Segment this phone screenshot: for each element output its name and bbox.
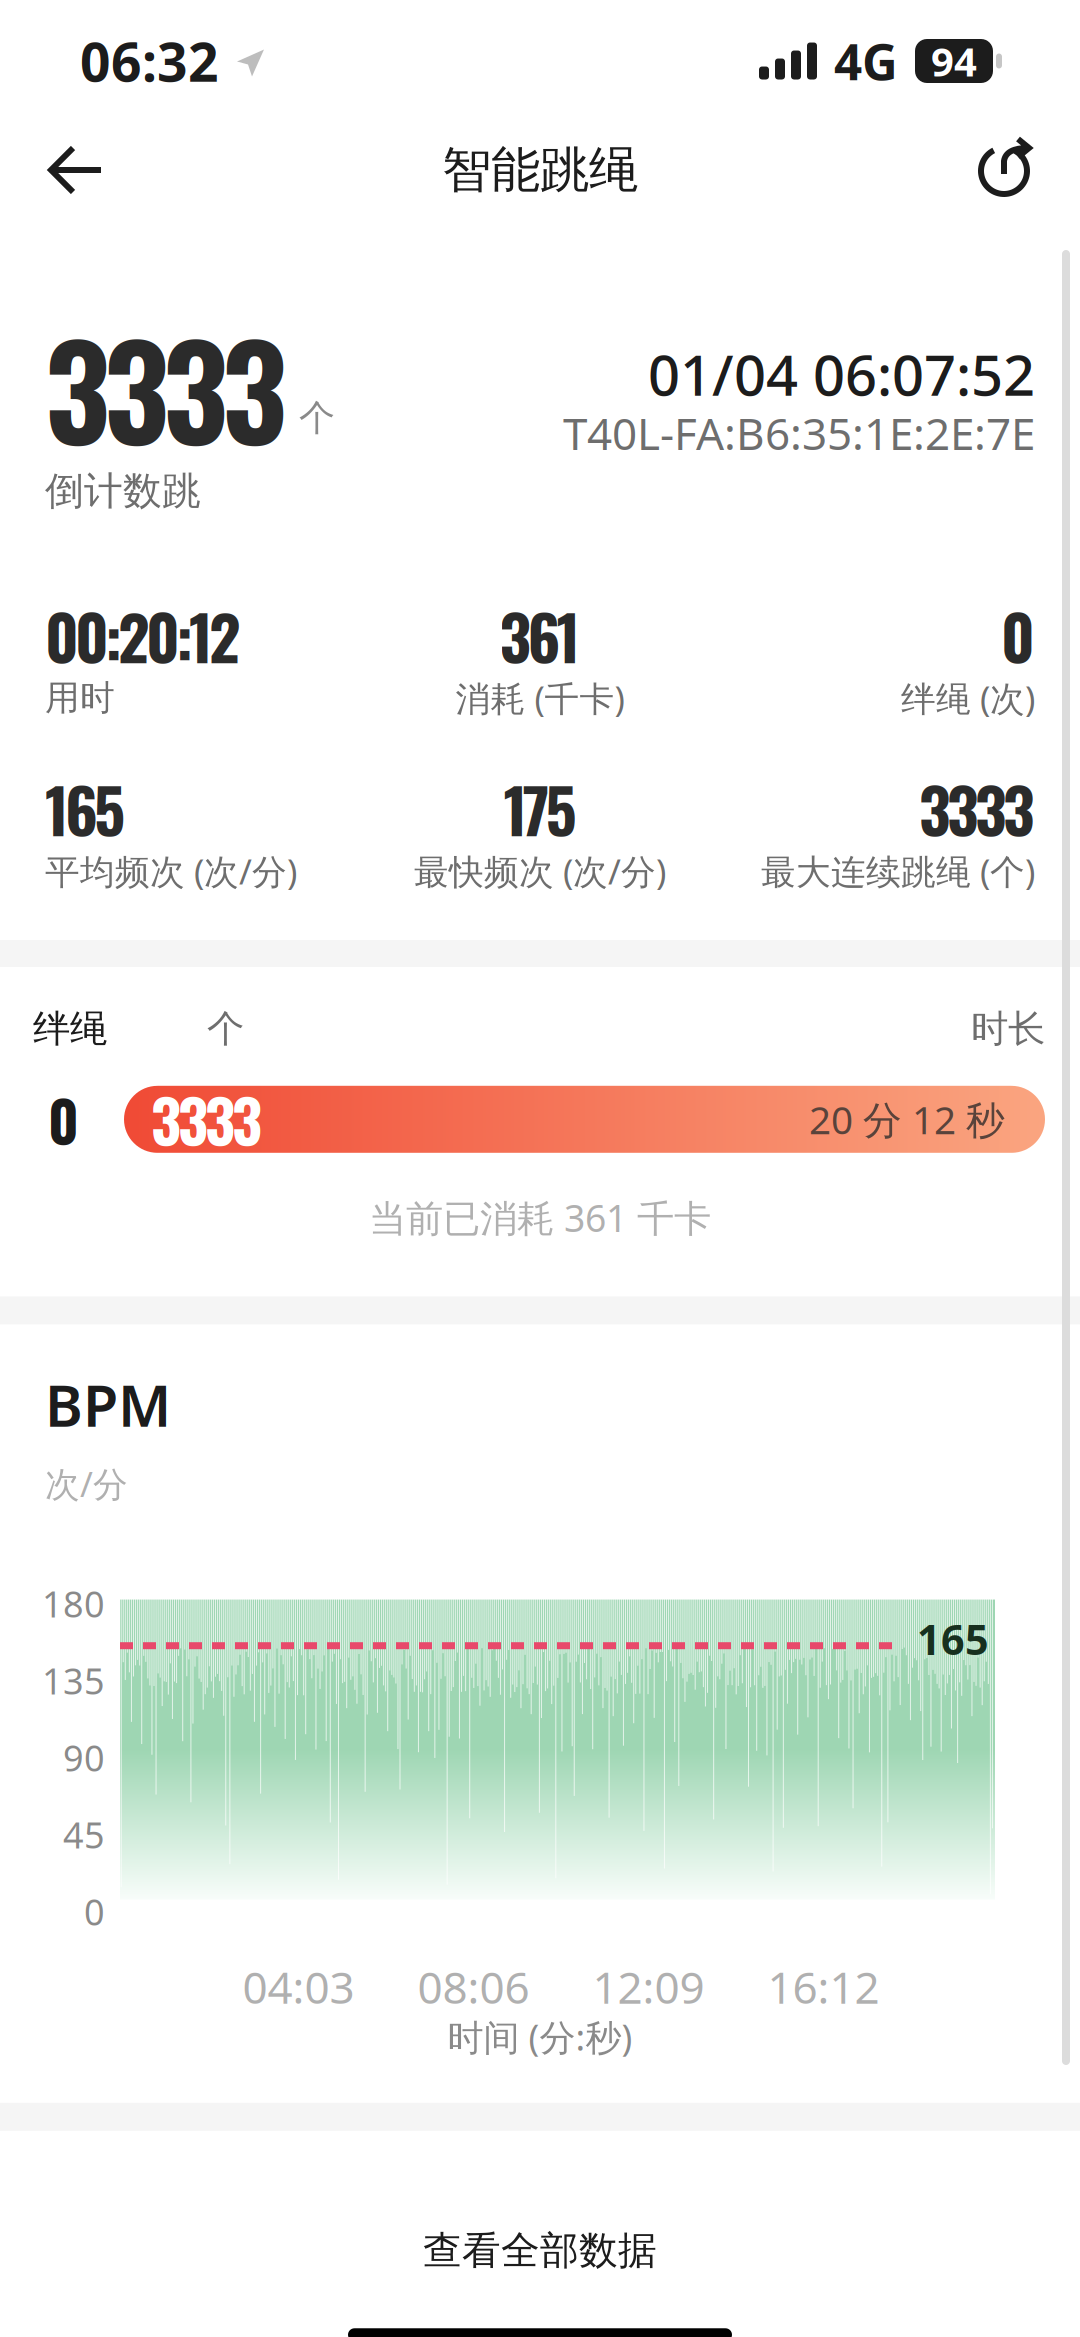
staticText: 04:03 [242, 1957, 354, 2016]
staticText: 智能跳绳 [442, 140, 638, 200]
staticText: 165 [45, 763, 125, 854]
button[interactable]: 查看全部数据 [0, 2181, 1080, 2320]
staticText: 16:12 [767, 1957, 879, 2016]
staticText: 平均频次 (次/分) [45, 848, 297, 894]
staticText: 最大连续跳绳 (个) [761, 848, 1035, 894]
staticText: 当前已消耗 361 千卡 [369, 1193, 711, 1242]
staticText: 135 [42, 1657, 105, 1704]
staticText: 时间 (分:秒) [447, 2013, 632, 2061]
staticText: T40L-FA:B6:35:1E:2E:7E [563, 404, 1035, 462]
staticText: 180 [42, 1580, 105, 1627]
staticText: 45 [63, 1811, 105, 1858]
staticText: 用时 [45, 677, 115, 719]
button[interactable]: Back [28, 127, 125, 213]
staticText: 查看全部数据 [423, 2227, 657, 2274]
staticText: 3333 [151, 1076, 262, 1163]
staticText: 最快频次 (次/分) [414, 848, 666, 894]
button[interactable]: Share [960, 127, 1052, 213]
staticText: 20 分 12 秒 [809, 1094, 1005, 1145]
staticText: 06:32 [80, 26, 219, 96]
staticText: 175 [503, 763, 576, 854]
staticText: 361 [499, 590, 580, 681]
staticText: 次/分 [45, 1460, 128, 1506]
staticText: BPM [45, 1366, 171, 1442]
staticText: 个 [299, 396, 335, 440]
staticText: 0 [1001, 590, 1035, 681]
staticText: 消耗 (千卡) [455, 675, 624, 721]
staticText: 时长 [971, 1006, 1045, 1052]
staticText: 倒计数跳 [45, 467, 201, 515]
staticText: 12:09 [592, 1957, 704, 2016]
staticText: 3333 [919, 763, 1035, 854]
staticText: 165 [917, 1611, 989, 1666]
staticText: 90 [63, 1734, 105, 1781]
staticText: 00:20:12 [45, 590, 241, 681]
staticText: 绊绳 (次) [901, 675, 1035, 721]
staticText: 4G [834, 28, 898, 94]
staticText: 个 [207, 1006, 244, 1052]
staticText: 08:06 [417, 1957, 529, 2016]
staticText: 94 [931, 34, 977, 87]
staticText: 0 [48, 1078, 79, 1161]
staticText: 0 [84, 1888, 105, 1935]
staticText: 3333 [45, 293, 287, 481]
staticText: 01/04 06:07:52 [648, 337, 1035, 411]
staticText: 绊绳 [33, 1006, 107, 1052]
